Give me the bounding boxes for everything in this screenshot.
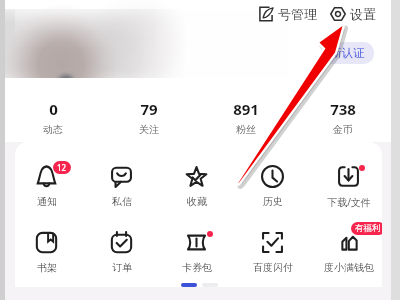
button[interactable]: 私信 [84, 165, 159, 208]
staticText: 金币 [333, 123, 353, 136]
staticText: 书架 [37, 261, 57, 274]
button[interactable]: 79 [101, 78, 197, 136]
button[interactable]: 有福利 [311, 231, 382, 274]
other: Annotation arrow [0, 0, 400, 300]
staticText: 度小满钱包 [324, 261, 374, 274]
staticText: 0 [49, 99, 58, 119]
staticText: 新认证 [330, 46, 365, 60]
button[interactable]: 0 [5, 78, 101, 136]
staticText: 私信 [112, 195, 132, 208]
button[interactable]: 12 [15, 165, 84, 208]
button[interactable]: 订单 [84, 231, 159, 274]
button[interactable]: 历史 [235, 165, 311, 208]
staticText: 收藏 [187, 195, 207, 208]
button[interactable]: 891 [197, 78, 294, 136]
staticText: 12 [57, 162, 67, 173]
staticText: 百度闪付 [253, 261, 293, 274]
staticText: 号管理 [278, 6, 317, 22]
staticText: 动态 [43, 123, 63, 136]
button[interactable]: 号管理 [258, 4, 317, 24]
button[interactable]: 下载/文件 [311, 165, 382, 209]
staticText: 下载/文件 [327, 195, 371, 209]
staticText: 关注 [139, 123, 159, 136]
staticText: 79 [140, 99, 158, 119]
staticText: 通知 [37, 195, 57, 208]
staticText: 设置 [350, 6, 376, 22]
button[interactable]: 书架 [15, 231, 84, 274]
button[interactable]: 卡券包 [159, 231, 235, 274]
button[interactable]: 设置 [330, 4, 376, 24]
button[interactable]: 738 [294, 78, 391, 136]
button[interactable]: 新认证 [321, 42, 374, 64]
button[interactable]: 收藏 [159, 165, 235, 208]
staticText: 订单 [112, 261, 132, 274]
staticText: 738 [330, 99, 356, 119]
staticText: 历史 [263, 195, 283, 208]
button[interactable]: 百度闪付 [235, 231, 311, 274]
staticText: 卡券包 [182, 261, 212, 274]
staticText: 粉丝 [236, 123, 256, 136]
staticText: 891 [233, 99, 259, 119]
staticText: 有福利 [355, 223, 381, 234]
